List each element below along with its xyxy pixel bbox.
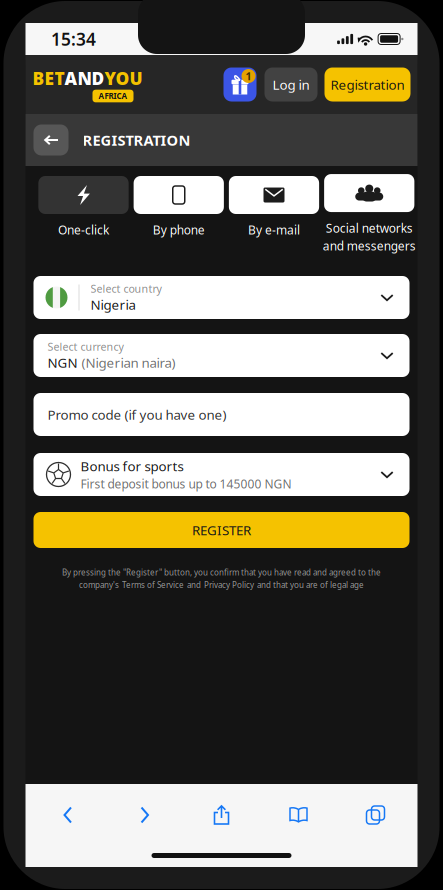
staticText: By pressing the "Register" button, you c… xyxy=(62,567,381,578)
staticText: Select currency xyxy=(47,340,123,354)
staticText: REGISTRATION xyxy=(82,130,190,150)
button[interactable]: Log in xyxy=(264,67,317,101)
button[interactable]: By phone xyxy=(129,176,219,252)
staticText: Log in xyxy=(272,76,309,93)
staticText: (Nigerian naira) xyxy=(81,354,175,371)
button[interactable]: Forward xyxy=(116,798,172,832)
staticText: Privacy Policy xyxy=(204,580,254,590)
button[interactable]: Tabs xyxy=(347,798,403,832)
button[interactable]: Bookmarks xyxy=(270,798,326,832)
button[interactable]: Share xyxy=(193,798,249,832)
staticText: 1 xyxy=(245,69,251,83)
staticText: company's xyxy=(79,580,119,590)
staticText: AFRICA xyxy=(98,91,127,101)
staticText: By phone xyxy=(153,222,205,238)
button[interactable]: By e-mail xyxy=(224,176,314,252)
button[interactable]: REGISTER xyxy=(33,512,409,548)
staticText: Terms of Service xyxy=(122,580,184,590)
staticText: and xyxy=(187,580,201,590)
staticText: Bonus for sports xyxy=(80,457,183,475)
staticText: NGN xyxy=(47,354,77,371)
button[interactable]: Back xyxy=(39,798,95,832)
button[interactable]: One-click xyxy=(33,176,124,252)
staticText: REGISTER xyxy=(192,521,251,539)
staticText: First deposit bonus up to 145000 NGN xyxy=(80,476,291,492)
staticText: Select country xyxy=(90,282,161,296)
button[interactable]: Back xyxy=(33,124,68,155)
staticText: 15:34 xyxy=(51,27,96,50)
staticText: BET xyxy=(32,67,64,90)
button[interactable]: Registration xyxy=(324,67,410,101)
staticText: and messengers xyxy=(323,238,416,254)
button[interactable]: Bonuses xyxy=(223,67,256,101)
staticText: and that you are of legal age xyxy=(257,580,364,590)
staticText: AND xyxy=(64,67,104,90)
staticText: YOU xyxy=(104,67,142,90)
staticText: By e-mail xyxy=(248,222,300,238)
staticText: Promo code (if you have one) xyxy=(47,406,226,423)
staticText: One-click xyxy=(58,222,109,238)
button[interactable]: Social networks xyxy=(319,176,409,252)
staticText: Registration xyxy=(330,76,404,93)
staticText: Social networks xyxy=(326,220,413,236)
staticText: Nigeria xyxy=(90,296,135,313)
